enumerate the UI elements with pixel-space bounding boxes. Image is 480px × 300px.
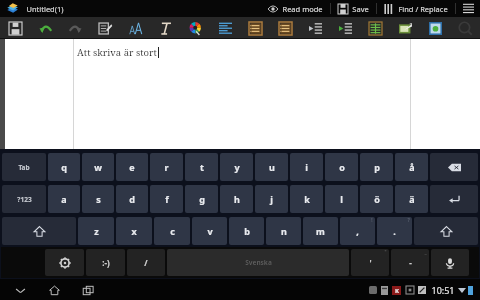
staticText: a <box>61 193 67 205</box>
button[interactable]: Shift <box>2 217 76 245</box>
button[interactable]: ö <box>360 185 393 213</box>
button[interactable]: c <box>154 217 190 245</box>
button[interactable]: Text color <box>180 17 210 39</box>
staticText: ö <box>374 193 380 205</box>
staticText: Untitled(1) <box>26 4 64 14</box>
button[interactable]: ?123 <box>2 185 46 213</box>
button[interactable]: o <box>325 153 358 181</box>
button[interactable]: Hide keyboard <box>10 280 30 300</box>
button[interactable] <box>5 1 20 16</box>
staticText: e <box>129 161 135 173</box>
staticText: Svenska <box>245 258 272 267</box>
button[interactable]: ' <box>351 249 389 276</box>
staticText: . <box>393 225 396 237</box>
button[interactable]: Backspace <box>430 153 478 181</box>
button[interactable]: t <box>185 153 218 181</box>
staticText: Tab <box>18 163 30 172</box>
staticText: ä <box>409 193 415 205</box>
button[interactable]: Tab <box>2 153 46 181</box>
button[interactable]: h <box>220 185 253 213</box>
button[interactable]: Italic <box>150 17 180 39</box>
button[interactable]: k <box>290 185 323 213</box>
button[interactable]: l <box>325 185 358 213</box>
staticText: n <box>281 225 287 237</box>
button[interactable]: Undo <box>30 17 60 39</box>
staticText: i <box>305 161 308 173</box>
staticText: w <box>94 161 102 173</box>
button[interactable]: f <box>150 185 183 213</box>
button[interactable]: v <box>192 217 227 245</box>
staticText: c <box>170 225 175 237</box>
button[interactable]: r <box>150 153 183 181</box>
button[interactable]: Save <box>331 0 376 17</box>
button[interactable]: a <box>48 185 80 213</box>
button[interactable]: Bulleted list <box>240 17 270 39</box>
staticText: o <box>339 161 345 173</box>
button[interactable]: Recent apps <box>78 280 98 300</box>
staticText: _ <box>424 249 427 256</box>
button[interactable]: Voice input <box>431 249 469 276</box>
button[interactable]: . <box>377 217 412 245</box>
staticText: m <box>316 225 325 237</box>
staticText: ! <box>371 217 373 224</box>
button[interactable]: Keyboard settings <box>45 249 84 276</box>
button[interactable]: , <box>340 217 375 245</box>
button[interactable]: Redo <box>60 17 90 39</box>
button[interactable]: m <box>303 217 338 245</box>
button[interactable]: x <box>116 217 152 245</box>
staticText: ? <box>407 217 410 224</box>
staticText: t <box>200 161 204 173</box>
staticText: g <box>199 193 205 205</box>
button[interactable]: Numbered list <box>270 17 300 39</box>
staticText: Att skriva är stort <box>77 46 157 59</box>
staticText: - <box>409 257 412 268</box>
button[interactable]: y <box>220 153 253 181</box>
button[interactable]: Save <box>0 17 30 39</box>
button[interactable]: Align <box>210 17 240 39</box>
staticText: ' <box>369 257 372 268</box>
button[interactable]: Shift <box>414 217 478 245</box>
button[interactable]: u <box>255 153 288 181</box>
button[interactable]: e <box>116 153 148 181</box>
button[interactable]: Font size <box>120 17 150 39</box>
button[interactable]: i <box>290 153 323 181</box>
button[interactable]: - <box>391 249 429 276</box>
button[interactable]: z <box>78 217 114 245</box>
button[interactable]: Find / Replace <box>377 0 455 17</box>
staticText: r <box>164 161 169 173</box>
staticText: l <box>340 193 343 205</box>
button[interactable]: d <box>116 185 148 213</box>
button[interactable]: q <box>48 153 80 181</box>
button[interactable]: Edit note <box>90 17 120 39</box>
button[interactable]: g <box>185 185 218 213</box>
button[interactable]: Increase indent <box>300 17 330 39</box>
staticText: " <box>384 249 387 256</box>
button[interactable]: Read mode <box>261 0 330 17</box>
button[interactable]: Insert image <box>390 17 420 39</box>
button[interactable]: w <box>82 153 114 181</box>
button[interactable]: Decrease indent <box>330 17 360 39</box>
button[interactable]: j <box>255 185 288 213</box>
button[interactable]: p <box>360 153 393 181</box>
button[interactable]: More options <box>456 0 480 17</box>
button[interactable]: å <box>395 153 428 181</box>
button[interactable]: Enter <box>430 185 478 213</box>
button[interactable]: Svenska <box>167 249 349 276</box>
button[interactable]: / <box>127 249 165 276</box>
button[interactable]: Home <box>44 280 64 300</box>
staticText: p <box>374 161 380 173</box>
button[interactable]: Search <box>450 17 480 39</box>
button[interactable]: Table <box>360 17 390 39</box>
button[interactable]: ä <box>395 185 428 213</box>
button[interactable]: b <box>229 217 264 245</box>
staticText: , <box>356 225 359 237</box>
staticText: Save <box>352 4 369 14</box>
button[interactable]: n <box>266 217 301 245</box>
button[interactable]: s <box>82 185 114 213</box>
button[interactable]: Insert picture <box>420 17 450 39</box>
button[interactable]: Att skriva är stort <box>5 39 480 149</box>
staticText: h <box>234 193 240 205</box>
staticText: :-) <box>102 257 110 268</box>
staticText: Find / Replace <box>398 4 448 14</box>
button[interactable]: :-) <box>86 249 125 276</box>
